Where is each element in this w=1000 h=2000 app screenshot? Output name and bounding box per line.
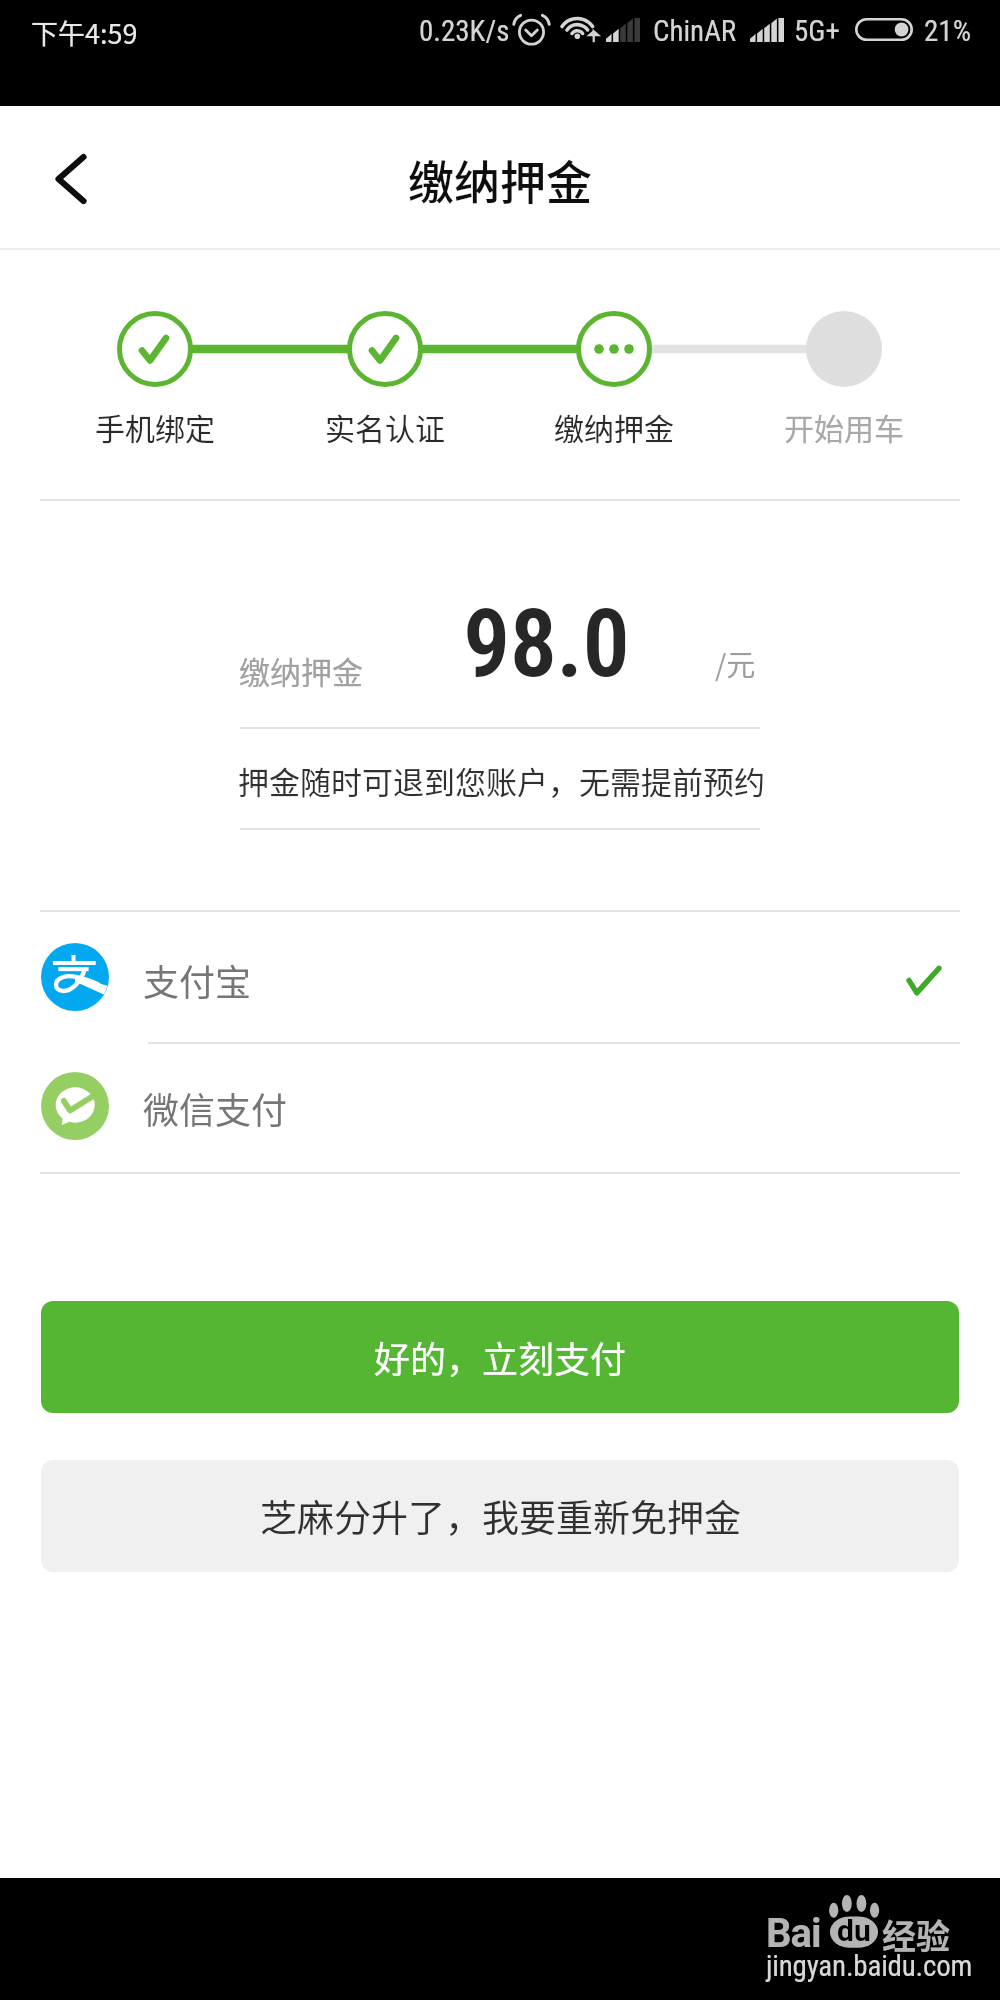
staticText: 0.23K/s bbox=[419, 14, 510, 48]
button[interactable]: 芝麻分升了，我要重新免押金 bbox=[41, 1460, 959, 1572]
staticText: 微信支付 bbox=[143, 1082, 288, 1134]
button[interactable]: 支付宝 bbox=[0, 912, 1000, 1042]
staticText: 开始用车 bbox=[784, 405, 904, 448]
staticText: 支付宝 bbox=[143, 954, 252, 1006]
staticText: 下午4:59 bbox=[31, 13, 138, 52]
button[interactable]: 返回 bbox=[33, 141, 109, 217]
staticText: 实名认证 bbox=[325, 405, 445, 448]
staticText: 好的，立刻支付 bbox=[374, 1331, 627, 1383]
staticText: 经验 bbox=[882, 1910, 950, 1959]
staticText: 缴纳押金 bbox=[408, 146, 592, 213]
staticText: jingyan.baidu.com bbox=[766, 1949, 973, 1983]
staticText: 21% bbox=[924, 14, 971, 48]
staticText: 芝麻分升了，我要重新免押金 bbox=[260, 1489, 741, 1543]
staticText: 5G+ bbox=[794, 14, 840, 48]
staticText: du bbox=[837, 1913, 871, 1948]
staticText: ChinAR bbox=[653, 14, 737, 48]
staticText: 押金随时可退到您账户，无需提前预约 bbox=[238, 758, 765, 803]
staticText: 缴纳押金 bbox=[239, 648, 363, 693]
button[interactable]: 微信支付 bbox=[0, 1044, 1000, 1172]
staticText: /元 bbox=[715, 642, 756, 684]
button[interactable]: 好的，立刻支付 bbox=[41, 1301, 959, 1413]
staticText: 98.0 bbox=[463, 589, 630, 699]
staticText: Bai bbox=[766, 1910, 821, 1957]
staticText: 手机绑定 bbox=[95, 405, 215, 448]
staticText: 缴纳押金 bbox=[554, 405, 674, 448]
